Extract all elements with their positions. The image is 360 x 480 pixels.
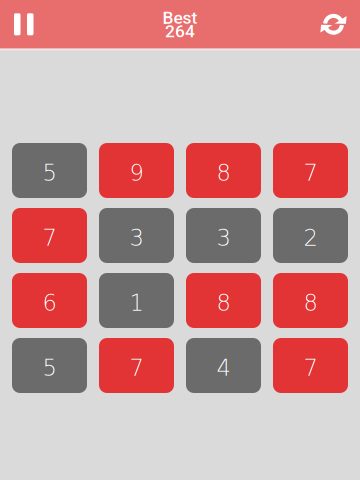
button[interactable]: 8: [186, 273, 261, 328]
button[interactable]: 5: [12, 338, 87, 393]
button[interactable]: 8: [273, 273, 348, 328]
button[interactable]: 3: [186, 208, 261, 263]
staticText: 3: [216, 225, 230, 251]
button[interactable]: 1: [99, 273, 174, 328]
button[interactable]: Pause: [0, 0, 43, 49]
staticText: 5: [42, 160, 56, 186]
button[interactable]: 5: [12, 143, 87, 198]
button[interactable]: 4: [186, 338, 261, 393]
staticText: 4: [216, 355, 230, 381]
staticText: 264: [165, 21, 195, 41]
button[interactable]: 2: [273, 208, 348, 263]
button[interactable]: Restart: [308, 0, 360, 49]
staticText: 1: [129, 290, 143, 316]
staticText: 6: [42, 290, 56, 316]
staticText: 5: [42, 355, 56, 381]
staticText: 3: [129, 225, 143, 251]
button[interactable]: 7: [12, 208, 87, 263]
staticText: 8: [303, 290, 317, 316]
button[interactable]: 7: [273, 143, 348, 198]
button[interactable]: 9: [99, 143, 174, 198]
staticText: Best: [162, 8, 197, 28]
button[interactable]: 7: [99, 338, 174, 393]
button[interactable]: 7: [273, 338, 348, 393]
button[interactable]: 8: [186, 143, 261, 198]
staticText: 2: [303, 225, 317, 251]
staticText: 8: [216, 160, 230, 186]
staticText: 9: [129, 160, 143, 186]
button[interactable]: 6: [12, 273, 87, 328]
staticText: 7: [303, 160, 317, 186]
staticText: 7: [129, 355, 143, 381]
staticText: 7: [42, 225, 56, 251]
staticText: 8: [216, 290, 230, 316]
staticText: 7: [303, 355, 317, 381]
button[interactable]: 3: [99, 208, 174, 263]
